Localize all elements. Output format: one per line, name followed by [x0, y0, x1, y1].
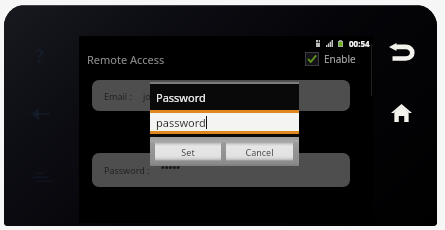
staticText: Remote Access	[87, 52, 165, 67]
staticText: password	[156, 115, 206, 130]
staticText: 00:54	[349, 38, 370, 48]
staticText: john.doe@mail.com	[143, 90, 228, 102]
staticText: Cancel	[245, 146, 274, 158]
staticText: Set	[181, 146, 195, 158]
button[interactable]: Enable	[305, 52, 356, 66]
staticText: Password :	[104, 164, 150, 176]
button[interactable]: Home	[378, 93, 424, 133]
button[interactable]: Email :	[92, 80, 350, 111]
button[interactable]: Cancel	[226, 142, 293, 161]
staticText: Enable	[324, 52, 356, 66]
button[interactable]: Set	[155, 142, 221, 161]
staticText: Email :	[104, 90, 132, 102]
button[interactable]: Back	[378, 32, 424, 72]
staticText: ?	[35, 43, 45, 69]
button[interactable]: Password :	[92, 153, 350, 187]
staticText: Password	[156, 90, 206, 105]
